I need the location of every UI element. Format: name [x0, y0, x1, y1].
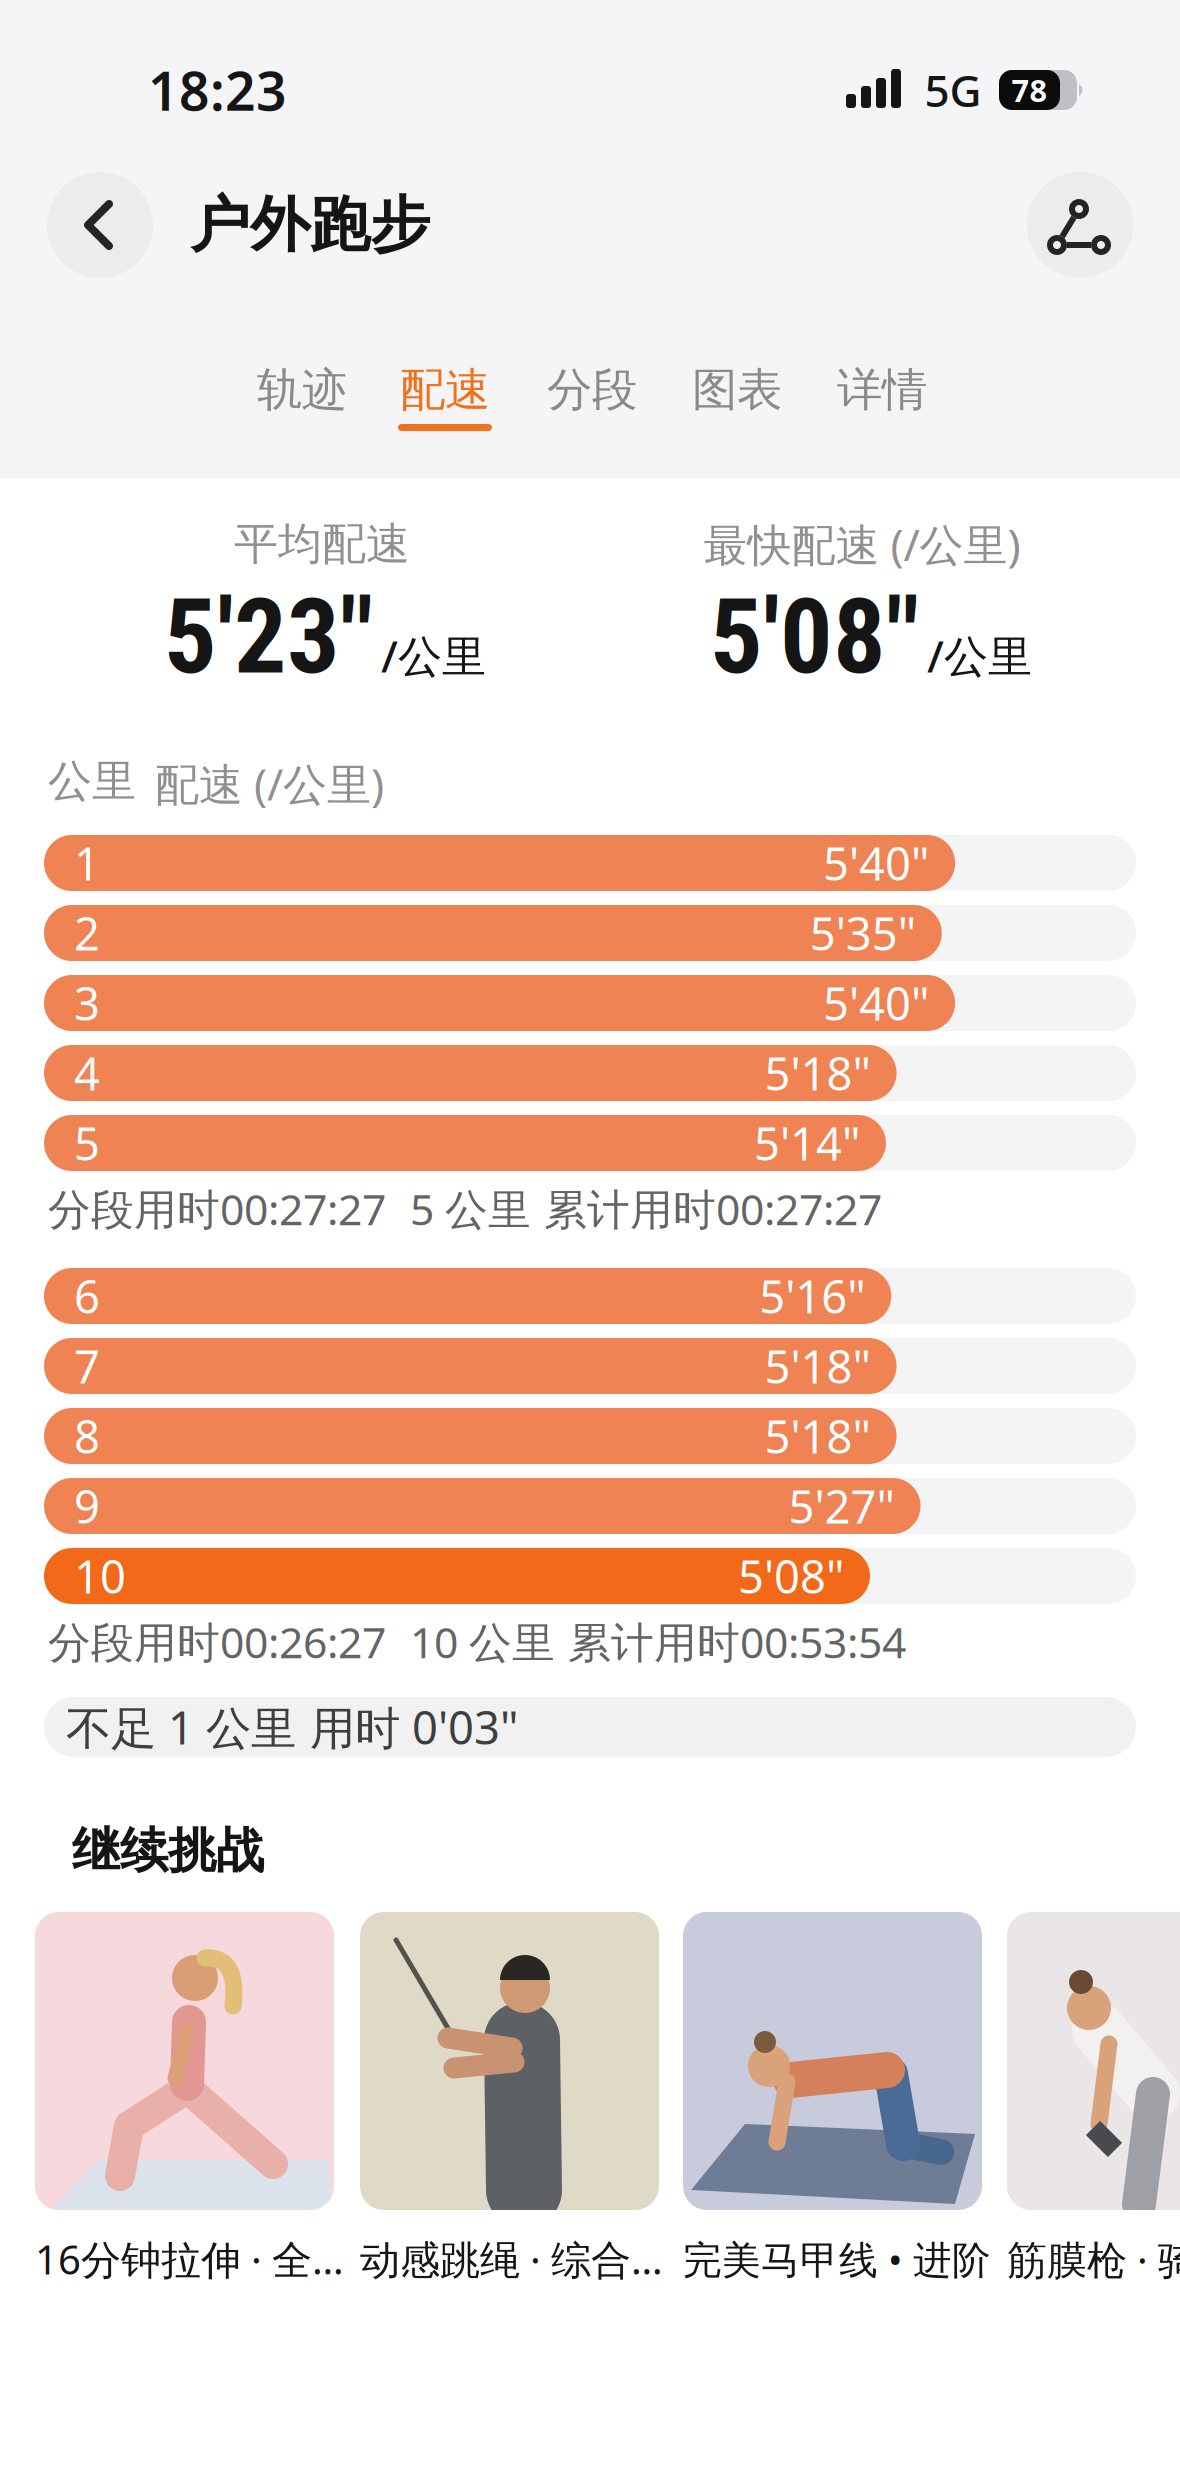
staticText: /公里 [927, 627, 1032, 684]
staticText: 16分钟拉伸 · 全… [35, 2233, 344, 2285]
staticText: 5 [74, 1113, 100, 1173]
staticText: 8 [74, 1406, 100, 1466]
staticText: 5'18" [765, 1336, 871, 1396]
staticText: 5 公里 累计用时00:27:27 [410, 1181, 882, 1236]
staticText: 5'16" [759, 1266, 865, 1326]
button[interactable]: 筋膜枪 · 骑行放松 [1007, 1912, 1180, 2290]
staticText: 5'40" [823, 973, 929, 1033]
staticText: 7 [74, 1336, 100, 1396]
staticText: 继续挑战 [72, 1822, 264, 1880]
staticText: 5'23" [164, 576, 373, 698]
staticText: 轨迹 [257, 363, 347, 417]
staticText: 5'08" [710, 576, 919, 698]
button[interactable]: 详情 [802, 355, 962, 425]
staticText: 详情 [837, 363, 927, 417]
staticText: /公里 [381, 627, 486, 684]
staticText: 5'14" [754, 1113, 860, 1173]
staticText: 5'40" [823, 833, 929, 893]
staticText: 分段用时00:26:27 [48, 1614, 386, 1669]
button[interactable]: 分段 [512, 355, 672, 425]
staticText: 10 公里 累计用时00:53:54 [410, 1614, 906, 1669]
staticText: 78 [1011, 70, 1047, 110]
button[interactable]: 配速 [365, 355, 525, 425]
staticText: 18:23 [148, 55, 287, 125]
staticText: 2 [74, 903, 100, 963]
button[interactable]: 16分钟拉伸 · 全… [35, 1912, 345, 2290]
staticText: 1 [74, 833, 100, 893]
staticText: 分段 [547, 363, 637, 417]
staticText: 5'18" [765, 1406, 871, 1466]
staticText: 9 [74, 1476, 100, 1536]
staticText: 4 [74, 1043, 100, 1103]
button[interactable]: Back [47, 172, 153, 278]
staticText: 配速 (/公里) [155, 755, 384, 812]
staticText: 户外跑步 [190, 189, 430, 261]
staticText: 完美马甲线 • 进阶 [683, 2234, 991, 2284]
staticText: 5'08" [738, 1546, 844, 1606]
staticText: 5'27" [788, 1476, 894, 1536]
staticText: 分段用时00:27:27 [48, 1181, 386, 1236]
staticText: 6 [74, 1266, 100, 1326]
staticText: 图表 [692, 363, 782, 417]
staticText: 不足 1 公里 用时 0'03" [66, 1698, 518, 1756]
button[interactable]: 完美马甲线 • 进阶 [683, 1912, 993, 2290]
staticText: 平均配速 [234, 518, 410, 570]
staticText: 10 [74, 1546, 126, 1606]
button[interactable]: 轨迹 [222, 355, 382, 425]
staticText: 动感跳绳 · 综合… [360, 2233, 663, 2285]
staticText: 5G [924, 61, 981, 119]
staticText: 3 [74, 973, 100, 1033]
button[interactable]: Share route [1027, 172, 1133, 278]
staticText: 配速 [400, 363, 490, 417]
staticText: 5'35" [810, 903, 916, 963]
button[interactable]: 图表 [657, 355, 817, 425]
staticText: 公里 [48, 755, 136, 808]
staticText: 筋膜枪 · 骑行放松 [1007, 2233, 1180, 2285]
staticText: 最快配速 (/公里) [703, 515, 1020, 573]
staticText: 5'18" [765, 1043, 871, 1103]
button[interactable]: 动感跳绳 · 综合… [360, 1912, 670, 2290]
